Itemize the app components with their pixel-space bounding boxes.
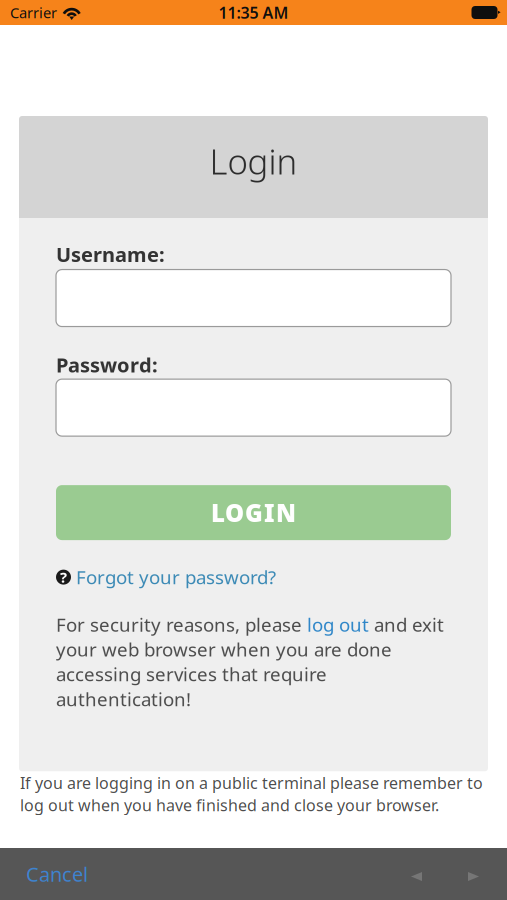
button[interactable]: LOGIN bbox=[56, 485, 451, 540]
staticText: Login bbox=[209, 138, 297, 184]
staticText: LOGIN bbox=[211, 497, 296, 529]
staticText: ? bbox=[60, 567, 67, 587]
button[interactable]: Cancel bbox=[26, 861, 88, 887]
button[interactable]: ? bbox=[56, 565, 276, 589]
staticText: For security reasons, please log out and… bbox=[56, 612, 444, 711]
staticText: Password: bbox=[56, 352, 158, 378]
staticText: Username: bbox=[56, 241, 165, 268]
staticText: Cancel bbox=[26, 861, 88, 887]
button[interactable]: Back bbox=[411, 867, 422, 881]
staticText: 11:35 AM bbox=[218, 2, 288, 23]
staticText: Forgot your password? bbox=[76, 565, 276, 589]
button[interactable]: Password bbox=[56, 379, 451, 436]
staticText: If you are logging in on a public termin… bbox=[20, 772, 483, 816]
button[interactable]: Forward bbox=[468, 867, 479, 881]
staticText: Carrier bbox=[10, 3, 57, 22]
button[interactable]: Username bbox=[56, 270, 451, 327]
